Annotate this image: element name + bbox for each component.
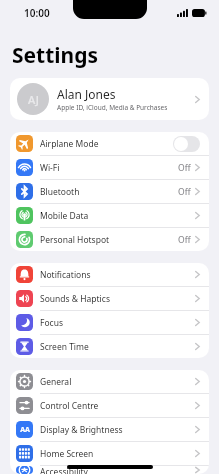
button[interactable]: Control Centre (10, 394, 209, 417)
button[interactable]: AJ (10, 78, 209, 120)
staticText: 10:00 (24, 6, 50, 20)
staticText: Display & Brightness (40, 424, 195, 436)
staticText: AA (20, 425, 30, 435)
staticText: Off (178, 186, 191, 198)
staticText: Airplane Mode (40, 138, 173, 150)
staticText: Off (178, 162, 191, 174)
button[interactable]: Home Screen (10, 442, 209, 465)
staticText: Mobile Data (40, 210, 195, 222)
staticText: Apple ID, iCloud, Media & Purchases (57, 103, 168, 112)
staticText: Sounds & Haptics (40, 293, 195, 305)
button[interactable]: Accessibility (10, 466, 209, 474)
staticText: Alan Jones (57, 86, 116, 102)
staticText: Bluetooth (40, 186, 178, 198)
staticText: General (40, 376, 195, 388)
button[interactable]: Sounds & Haptics (10, 287, 209, 310)
staticText: Control Centre (40, 400, 195, 412)
button[interactable]: Wi-Fi (10, 156, 209, 179)
button[interactable]: AA (10, 418, 209, 441)
staticText: Personal Hotspot (40, 234, 178, 246)
button[interactable]: Bluetooth (10, 180, 209, 203)
staticText: Off (178, 234, 191, 246)
button[interactable]: Personal Hotspot (10, 228, 209, 251)
staticText: Notifications (40, 269, 195, 281)
button[interactable]: Airplane Mode (10, 132, 209, 155)
staticText: Settings (12, 41, 99, 70)
button[interactable]: Notifications (10, 263, 209, 286)
staticText: Screen Time (40, 341, 195, 353)
staticText: Wi-Fi (40, 162, 178, 174)
button[interactable]: Mobile Data (10, 204, 209, 227)
staticText: Focus (40, 317, 195, 329)
staticText: AJ (28, 92, 39, 107)
button[interactable]: Focus (10, 311, 209, 334)
button[interactable]: General (10, 370, 209, 393)
button[interactable]: Screen Time (10, 335, 209, 358)
staticText: Home Screen (40, 448, 195, 460)
staticText: Accessibility (40, 466, 195, 474)
button[interactable]: Airplane Mode toggle, off (173, 136, 200, 152)
